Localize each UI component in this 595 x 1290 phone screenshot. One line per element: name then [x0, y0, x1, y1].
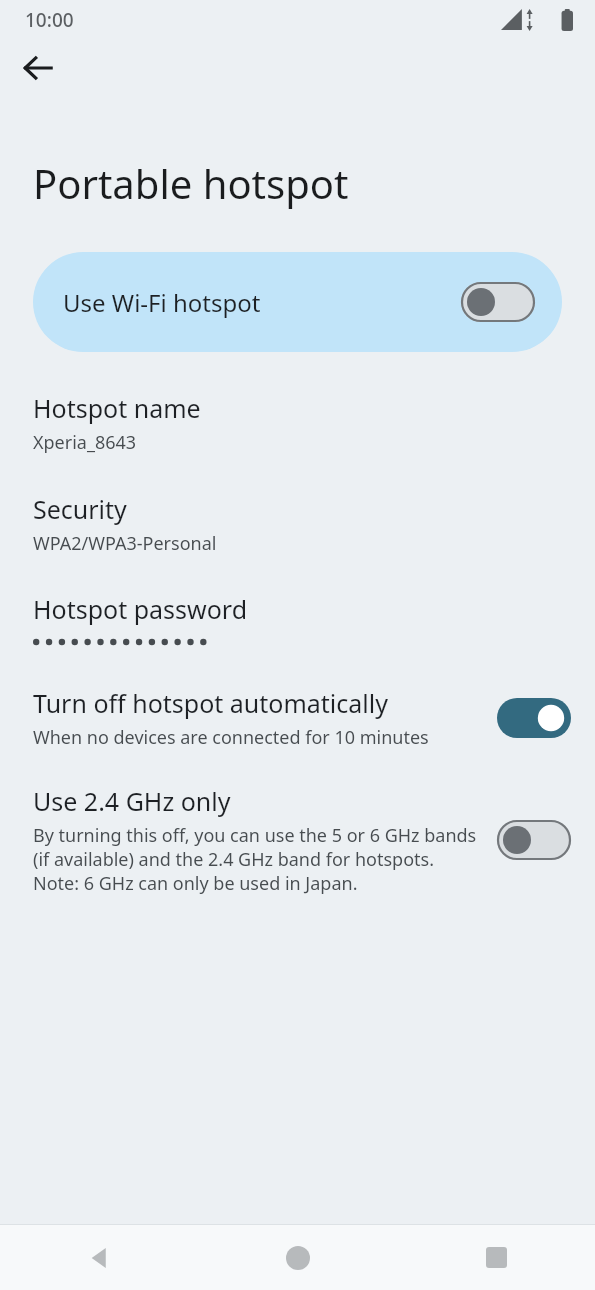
staticText: Hotspot name	[33, 391, 201, 425]
staticText: Use Wi-Fi hotspot	[63, 286, 461, 319]
staticText: When no devices are connected for 10 min…	[33, 725, 429, 750]
staticText: Turn off hotspot automatically	[33, 686, 388, 720]
staticText: Security	[33, 492, 127, 526]
button[interactable]: Security	[0, 490, 595, 558]
staticText: Portable hotspot	[33, 156, 349, 210]
button[interactable]: Use 2.4 GHz only	[0, 782, 595, 897]
button[interactable]: Hotspot password	[0, 590, 595, 650]
staticText: Hotspot password	[33, 592, 248, 626]
staticText: Xperia_8643	[33, 430, 137, 455]
button[interactable]: Recent apps	[397, 1225, 595, 1290]
button[interactable]: Use Wi-Fi hotspot	[33, 252, 562, 352]
button[interactable]: Turn off hotspot automatically	[0, 684, 595, 752]
button[interactable]: Hotspot name	[0, 389, 595, 457]
button[interactable]: Back	[10, 40, 66, 96]
button[interactable]: Home	[199, 1225, 397, 1290]
staticText: WPA2/WPA3-Personal	[33, 531, 217, 556]
button[interactable]: Back	[0, 1225, 199, 1290]
staticText: 10:00	[25, 7, 74, 33]
staticText: By turning this off, you can use the 5 o…	[33, 823, 483, 895]
staticText: Use 2.4 GHz only	[33, 784, 231, 818]
